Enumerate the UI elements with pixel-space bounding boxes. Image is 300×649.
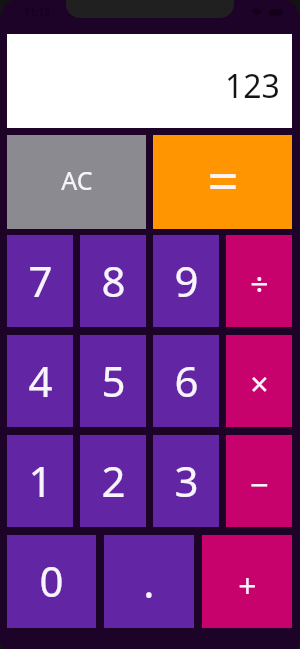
staticText: AC <box>61 163 93 197</box>
staticText: 3 <box>174 452 199 509</box>
staticText: ÷ <box>250 262 269 306</box>
staticText: . <box>143 553 155 610</box>
button[interactable]: Decimal point <box>104 535 194 628</box>
staticText: 9 <box>174 252 199 309</box>
staticText: + <box>238 564 257 608</box>
staticText: 11:13 <box>24 5 50 19</box>
button[interactable]: AC <box>7 135 146 229</box>
staticText: 5 <box>101 352 126 409</box>
staticText: 1 <box>28 452 53 509</box>
button[interactable]: 2 <box>80 435 146 527</box>
other: Status icons <box>250 6 284 18</box>
staticText: 4 <box>28 352 53 409</box>
button[interactable]: Display 123 <box>7 34 292 128</box>
button[interactable]: 9 <box>153 235 219 327</box>
staticText: × <box>250 362 269 406</box>
button[interactable]: 7 <box>7 235 73 327</box>
button[interactable]: Add <box>202 535 292 628</box>
staticText: 123 <box>225 64 280 108</box>
button[interactable]: Equals <box>153 135 292 229</box>
button[interactable]: 3 <box>153 435 219 527</box>
staticText: 6 <box>174 352 199 409</box>
button[interactable]: Multiply <box>226 335 292 427</box>
button[interactable]: 1 <box>7 435 73 527</box>
button[interactable]: Subtract <box>226 435 292 527</box>
staticText: = <box>207 142 239 217</box>
staticText: − <box>250 462 269 507</box>
button[interactable]: 5 <box>80 335 146 427</box>
button[interactable]: Divide <box>226 235 292 327</box>
staticText: 8 <box>101 252 126 309</box>
button[interactable]: 8 <box>80 235 146 327</box>
staticText: 2 <box>101 452 126 509</box>
button[interactable]: 4 <box>7 335 73 427</box>
button[interactable]: 0 <box>7 535 96 628</box>
staticText: 7 <box>28 252 53 309</box>
button[interactable]: 6 <box>153 335 219 427</box>
staticText: 0 <box>39 552 64 609</box>
